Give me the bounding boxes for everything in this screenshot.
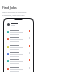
button[interactable]: Save job — [7, 45, 30, 52]
button[interactable]: Save job — [7, 52, 30, 59]
button[interactable] — [7, 23, 30, 26]
button[interactable]: Save job — [7, 67, 30, 72]
button[interactable]: Save job — [7, 30, 30, 37]
button[interactable]: Save job — [7, 59, 30, 66]
staticText: of openings, right from here — [2, 14, 25, 16]
button[interactable]: Save job — [7, 37, 30, 44]
staticText: Search and apply to thousands — [2, 11, 27, 13]
staticText: Find Jobs — [2, 5, 17, 10]
